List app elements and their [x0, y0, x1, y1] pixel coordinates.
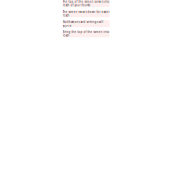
- staticText: The screen moves down for easier reach: [62, 10, 109, 17]
- staticText: Bring the top of the screen into reach: [62, 30, 109, 37]
- staticText: The top of the screen comes into reach o…: [62, 0, 109, 7]
- staticText: Notifications and settings will appear: [62, 20, 103, 27]
